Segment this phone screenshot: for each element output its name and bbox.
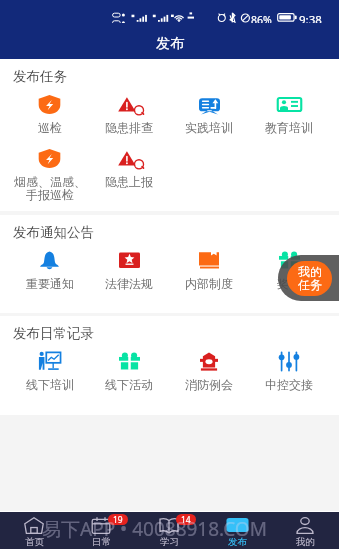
staticText: 中控交接 <box>265 377 313 392</box>
button[interactable]: 烟感、温感、 手报巡检 <box>10 135 89 202</box>
staticText: 发布 <box>228 536 247 548</box>
staticText: 教育培训 <box>265 120 313 135</box>
button[interactable]: 学习 <box>135 512 203 549</box>
staticText: 发布日常记录 <box>13 325 94 342</box>
button[interactable]: 重要通知 <box>10 241 89 291</box>
staticText: 线下活动 <box>105 377 153 392</box>
staticText: 重要通知 <box>26 276 74 291</box>
button[interactable]: 中控交接 <box>249 342 329 392</box>
staticText: 我的 <box>296 536 315 548</box>
staticText: 巡检 <box>38 120 62 135</box>
staticText: 发布 <box>156 35 184 53</box>
button[interactable]: 线下培训 <box>10 342 89 392</box>
staticText: 发布通知公告 <box>13 224 94 241</box>
button[interactable]: 线下活动 <box>89 342 169 392</box>
staticText: 14 <box>181 514 191 525</box>
staticText: 易下APP • 40088918.COM <box>42 516 267 542</box>
staticText: 烟感、温感、 手报巡检 <box>14 174 86 202</box>
staticText: 隐患上报 <box>105 174 153 189</box>
button[interactable]: 隐患排查 <box>89 85 169 135</box>
staticText: 实践培训 <box>185 120 233 135</box>
button[interactable]: 我的 任务 <box>278 255 339 301</box>
button[interactable]: 首页 <box>0 512 67 549</box>
staticText: 首页 <box>25 536 44 548</box>
button[interactable]: 法律法规 <box>89 241 169 291</box>
staticText: 9:38 <box>299 12 322 28</box>
button[interactable]: 日常 <box>67 512 135 549</box>
staticText: 线下培训 <box>26 377 74 392</box>
staticText: 隐患排查 <box>105 120 153 135</box>
staticText: 19 <box>113 514 123 525</box>
staticText: 奖罚 <box>277 276 301 291</box>
staticText: 86% <box>251 13 272 27</box>
button[interactable]: 奖罚 <box>249 241 329 291</box>
staticText: 法律法规 <box>105 276 153 291</box>
button[interactable]: 实践培训 <box>169 85 249 135</box>
button[interactable]: 巡检 <box>10 85 89 135</box>
button[interactable]: 教育培训 <box>249 85 329 135</box>
button[interactable]: 内部制度 <box>169 241 249 291</box>
staticText: 日常 <box>92 536 111 548</box>
button[interactable]: 隐患上报 <box>89 135 169 189</box>
staticText: 发布任务 <box>13 68 67 85</box>
staticText: 学习 <box>160 536 179 548</box>
button[interactable]: 我的 <box>271 512 339 549</box>
button[interactable]: 发布 <box>203 512 271 549</box>
button[interactable]: 消防例会 <box>169 342 249 392</box>
staticText: 我的 任务 <box>298 264 322 293</box>
staticText: 消防例会 <box>185 377 233 392</box>
staticText: 内部制度 <box>185 276 233 291</box>
